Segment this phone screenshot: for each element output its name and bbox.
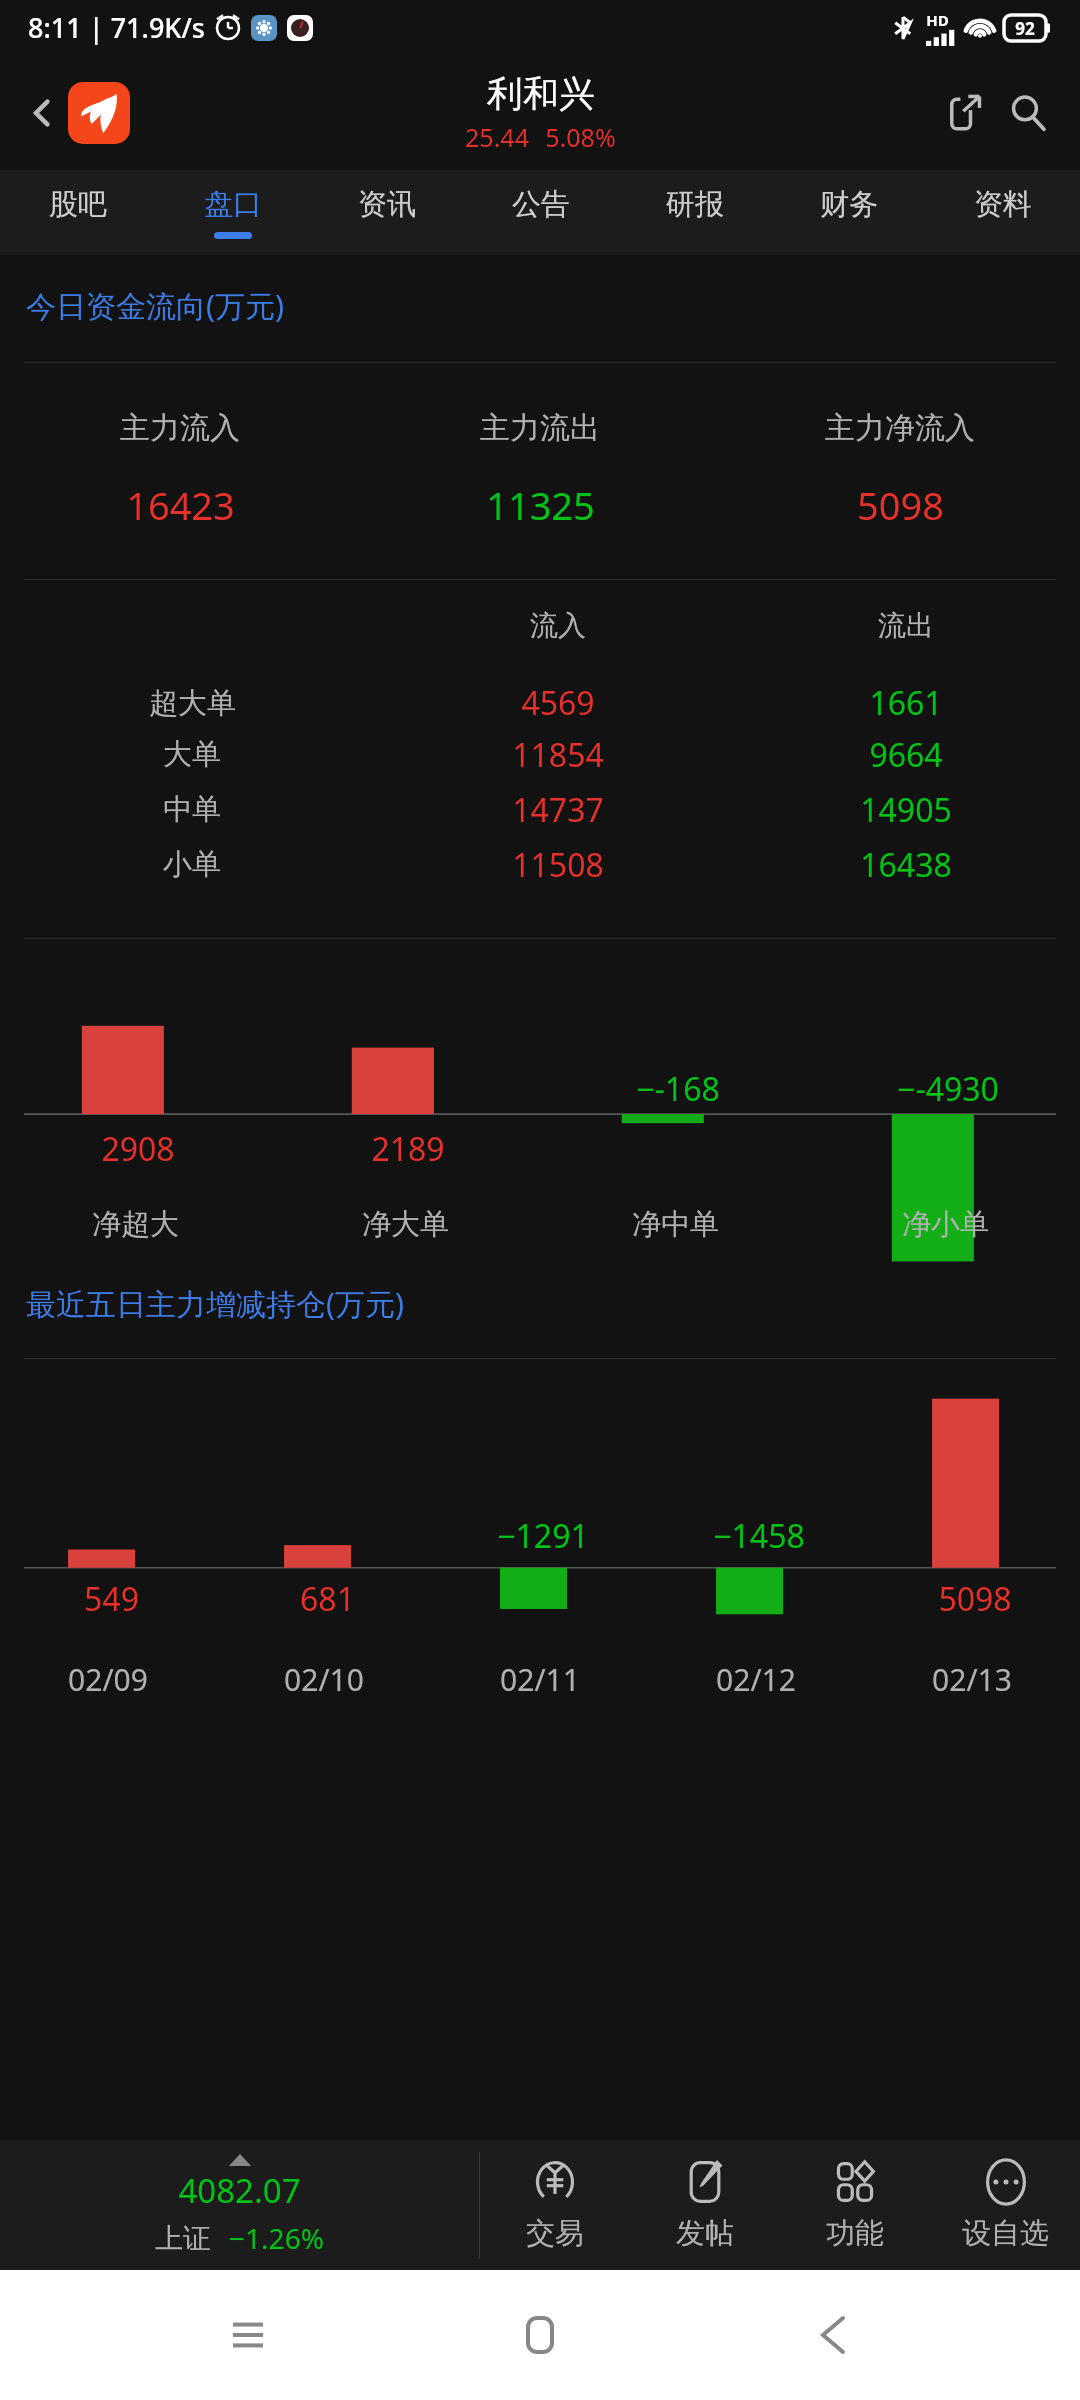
staticText: 11854 (512, 733, 604, 777)
staticText: 4082.07 (178, 2168, 301, 2213)
button[interactable]: 资料 (926, 170, 1080, 255)
staticText: 16438 (860, 843, 952, 887)
staticText: 549 (84, 1577, 139, 1621)
staticText: 资讯 (358, 186, 416, 223)
staticText: 92 (1015, 17, 1035, 40)
staticText: 净超大 (92, 1206, 179, 1243)
staticText: 4569 (521, 681, 595, 725)
staticText: 公告 (512, 186, 570, 223)
staticText: 主力净流入 (825, 409, 975, 447)
button[interactable]: 股吧 (0, 170, 155, 255)
staticText: 02/10 (284, 1659, 364, 1700)
button[interactable]: 公告 (464, 170, 618, 255)
staticText: 大单 (163, 736, 221, 773)
staticText: 超大单 (149, 685, 236, 722)
staticText: 25.44 (465, 120, 529, 154)
staticText: 5.08% (545, 120, 616, 154)
staticText: −-4930 (897, 1067, 999, 1111)
button[interactable]: App logo (68, 82, 130, 144)
staticText: 14905 (860, 788, 952, 832)
staticText: 净小单 (902, 1206, 989, 1243)
staticText: 设自选 (962, 2215, 1049, 2252)
staticText: 盘口 (204, 186, 262, 223)
staticText: 02/09 (68, 1659, 148, 1700)
staticText: 11325 (486, 479, 595, 531)
staticText: −1291 (497, 1514, 589, 1558)
staticText: 16423 (126, 479, 235, 531)
button[interactable]: 4082.07 (0, 2140, 479, 2270)
staticText: 14737 (512, 788, 604, 832)
staticText: 02/11 (500, 1659, 580, 1700)
button[interactable]: 盘口 (155, 170, 310, 255)
staticText: 研报 (666, 186, 724, 223)
button[interactable]: 资讯 (310, 170, 464, 255)
button[interactable]: Home (495, 2290, 585, 2380)
staticText: 上证 (155, 2221, 211, 2256)
staticText: 8:11 | 71.9K/s (28, 9, 205, 46)
button[interactable]: 财务 (772, 170, 926, 255)
staticText: −1.26% (229, 2219, 324, 2257)
staticText: 发帖 (676, 2215, 734, 2252)
staticText: 主力流入 (120, 409, 240, 447)
button[interactable]: Share (936, 85, 992, 141)
staticText: 小单 (163, 846, 221, 883)
button[interactable]: Back (18, 89, 66, 137)
staticText: 净中单 (632, 1206, 719, 1243)
staticText: 681 (300, 1577, 355, 1621)
staticText: 资料 (974, 186, 1032, 223)
button[interactable]: 功能 (780, 2140, 930, 2270)
button[interactable]: 发帖 (630, 2140, 780, 2270)
staticText: 2908 (101, 1127, 175, 1171)
staticText: 流出 (878, 608, 934, 643)
staticText: 财务 (820, 186, 878, 223)
staticText: 02/12 (716, 1659, 796, 1700)
staticText: 流入 (530, 608, 586, 643)
staticText: 1661 (869, 681, 943, 725)
staticText: 利和兴 (487, 71, 595, 116)
staticText: 最近五日主力增减持仓(万元) (26, 1283, 404, 1324)
button[interactable]: Back (788, 2290, 878, 2380)
button[interactable]: 交易 (480, 2140, 630, 2270)
staticText: 中单 (163, 791, 221, 828)
staticText: 今日资金流向(万元) (26, 285, 284, 326)
button[interactable]: Search (1000, 85, 1056, 141)
staticText: 股吧 (49, 186, 107, 223)
button[interactable]: Recents (203, 2290, 293, 2380)
staticText: −-168 (636, 1067, 720, 1111)
staticText: 净大单 (362, 1206, 449, 1243)
staticText: 9664 (869, 733, 943, 777)
button[interactable]: 研报 (618, 170, 772, 255)
staticText: −1458 (713, 1514, 805, 1558)
staticText: 5098 (938, 1577, 1012, 1621)
staticText: 功能 (826, 2215, 884, 2252)
staticText: 主力流出 (480, 409, 600, 447)
staticText: 2189 (371, 1127, 445, 1171)
staticText: 02/13 (932, 1659, 1012, 1700)
staticText: 5098 (857, 479, 944, 531)
staticText: 交易 (526, 2215, 584, 2252)
button[interactable]: 设自选 (930, 2140, 1080, 2270)
staticText: HD (926, 10, 949, 30)
staticText: 11508 (512, 843, 604, 887)
